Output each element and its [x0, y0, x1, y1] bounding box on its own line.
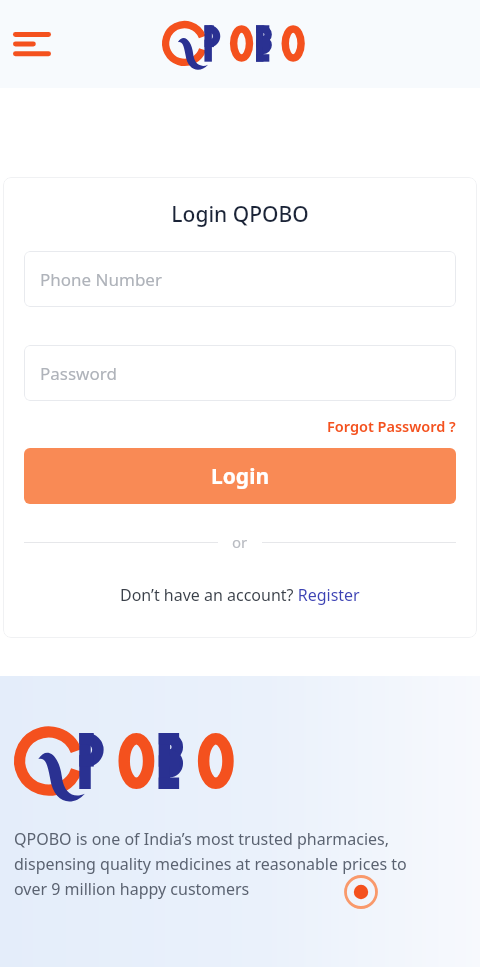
- staticText: Login: [211, 462, 270, 491]
- staticText: Login QPOBO: [24, 200, 456, 229]
- button[interactable]: Password: [24, 345, 456, 401]
- staticText: Phone Number: [40, 268, 162, 291]
- staticText: QPOBO is one of India’s most trusted pha…: [14, 828, 434, 899]
- staticText: Forgot Password ?: [327, 416, 456, 436]
- staticText: Password: [40, 362, 117, 385]
- button[interactable]: Open menu: [4, 16, 60, 72]
- button[interactable]: Login: [24, 448, 456, 504]
- button[interactable]: Phone Number: [24, 251, 456, 307]
- button[interactable]: Carousel indicator: [343, 874, 379, 910]
- button[interactable]: Forgot Password ?: [327, 414, 456, 438]
- staticText: or: [232, 532, 248, 552]
- staticText: Don’t have an account? Register: [120, 584, 360, 606]
- button[interactable]: Don’t have an account? Register: [120, 582, 360, 608]
